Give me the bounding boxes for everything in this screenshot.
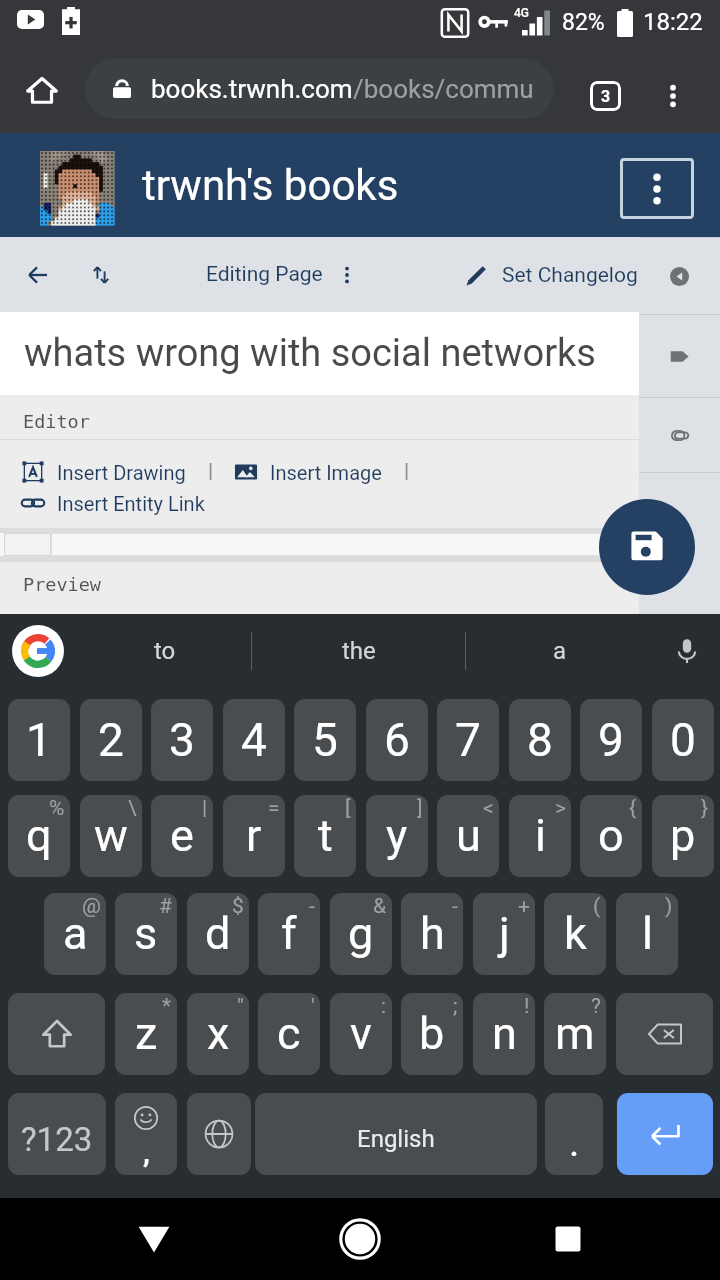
staticText: @ bbox=[82, 894, 101, 919]
button[interactable]: c bbox=[258, 993, 320, 1075]
button[interactable]: i bbox=[509, 795, 571, 877]
button[interactable]: h bbox=[401, 893, 463, 975]
button[interactable]: l bbox=[616, 893, 678, 975]
button[interactable]: f bbox=[258, 893, 320, 975]
button[interactable]: 9 bbox=[580, 699, 642, 781]
button[interactable]: to bbox=[78, 614, 251, 688]
button[interactable]: Google bbox=[12, 625, 64, 677]
staticText: /books/commu bbox=[353, 74, 534, 104]
button[interactable]: . bbox=[545, 1093, 603, 1175]
button[interactable]: Editing Page bbox=[206, 262, 357, 287]
staticText: j bbox=[499, 907, 510, 960]
button[interactable]: u bbox=[437, 795, 499, 877]
button[interactable]: 2 bbox=[80, 699, 142, 781]
staticText: k bbox=[564, 907, 587, 960]
staticText: . bbox=[570, 1130, 579, 1163]
button[interactable]: m bbox=[544, 993, 606, 1075]
button[interactable]: 6 bbox=[366, 699, 428, 781]
staticText: Insert Entity Link bbox=[57, 492, 205, 515]
button[interactable]: Back bbox=[14, 251, 62, 299]
staticText: ; bbox=[453, 994, 458, 1019]
button[interactable]: Insert Drawing bbox=[21, 460, 186, 484]
button[interactable]: d bbox=[187, 893, 249, 975]
staticText: 0 bbox=[670, 713, 696, 767]
button[interactable]: Insert Entity Link bbox=[21, 491, 205, 515]
button[interactable]: g bbox=[330, 893, 392, 975]
button[interactable]: Home bbox=[330, 1209, 390, 1269]
staticText: books.trwnh.com bbox=[151, 74, 353, 104]
button[interactable]: q bbox=[8, 795, 70, 877]
button[interactable]: Collapse bbox=[639, 238, 720, 314]
button[interactable]: s bbox=[115, 893, 177, 975]
button[interactable]: 1 bbox=[8, 699, 70, 781]
button[interactable]: n bbox=[473, 993, 535, 1075]
staticText: to bbox=[154, 637, 176, 665]
staticText: u bbox=[456, 809, 481, 862]
staticText: & bbox=[373, 894, 387, 919]
button[interactable]: Home bbox=[14, 62, 70, 118]
staticText: a bbox=[63, 907, 88, 960]
button[interactable]: Tags bbox=[639, 315, 720, 397]
button[interactable]: Change language bbox=[187, 1093, 251, 1175]
button[interactable]: r bbox=[223, 795, 285, 877]
button[interactable]: j bbox=[473, 893, 535, 975]
button[interactable]: English bbox=[255, 1093, 537, 1175]
staticText: { bbox=[629, 796, 637, 821]
button[interactable]: Tabs bbox=[582, 73, 628, 119]
button[interactable]: o bbox=[580, 795, 642, 877]
staticText: 4 bbox=[241, 713, 267, 767]
button[interactable]: Emoji bbox=[115, 1093, 177, 1175]
button[interactable]: Back bbox=[124, 1209, 184, 1269]
button[interactable]: 7 bbox=[437, 699, 499, 781]
button[interactable]: Recent apps bbox=[538, 1209, 598, 1269]
button[interactable]: the bbox=[252, 614, 465, 688]
button[interactable]: p bbox=[652, 795, 714, 877]
staticText: ' bbox=[311, 994, 315, 1019]
button[interactable]: t bbox=[294, 795, 356, 877]
staticText: 82% bbox=[562, 9, 605, 36]
staticText: ) bbox=[665, 894, 673, 919]
button[interactable]: v bbox=[330, 993, 392, 1075]
button[interactable]: y bbox=[366, 795, 428, 877]
button[interactable]: Save bbox=[599, 499, 695, 595]
button[interactable]: More options bbox=[650, 73, 696, 119]
button[interactable]: books.trwnh.com bbox=[85, 59, 554, 119]
staticText: ? bbox=[591, 994, 601, 1019]
button[interactable]: w bbox=[80, 795, 142, 877]
button[interactable]: e bbox=[151, 795, 213, 877]
button[interactable]: a bbox=[44, 893, 106, 975]
staticText: English bbox=[357, 1125, 435, 1153]
button[interactable]: b bbox=[401, 993, 463, 1075]
button[interactable]: Set Changelog bbox=[464, 262, 638, 288]
button[interactable]: Voice input bbox=[658, 614, 716, 688]
staticText: < bbox=[483, 796, 494, 821]
button[interactable]: z bbox=[115, 993, 177, 1075]
button[interactable]: ?123 bbox=[8, 1093, 106, 1175]
staticText: 5 bbox=[312, 713, 338, 767]
button[interactable]: Shift bbox=[8, 993, 105, 1075]
button[interactable]: Menu bbox=[620, 158, 694, 219]
button[interactable]: 8 bbox=[509, 699, 571, 781]
button[interactable]: Insert Image bbox=[234, 460, 382, 484]
staticText: " bbox=[237, 994, 244, 1019]
staticText: $ bbox=[232, 894, 244, 919]
staticText: ( bbox=[593, 894, 601, 919]
staticText: trwnh's books bbox=[142, 161, 399, 210]
button[interactable]: Enter bbox=[617, 1093, 713, 1175]
button[interactable]: x bbox=[187, 993, 249, 1075]
button[interactable]: 5 bbox=[294, 699, 356, 781]
staticText: ?123 bbox=[21, 1120, 93, 1159]
button[interactable]: 0 bbox=[652, 699, 714, 781]
staticText: c bbox=[277, 1007, 301, 1060]
button[interactable]: Backspace bbox=[616, 993, 713, 1075]
staticText: t bbox=[318, 809, 333, 862]
button[interactable]: Sort bbox=[79, 253, 123, 297]
staticText: 1 bbox=[26, 713, 52, 767]
button[interactable]: 3 bbox=[151, 699, 213, 781]
staticText: q bbox=[26, 809, 52, 862]
button[interactable]: a bbox=[466, 614, 654, 688]
button[interactable]: Attachments bbox=[639, 398, 720, 472]
button[interactable]: 4 bbox=[223, 699, 285, 781]
staticText: % bbox=[49, 796, 65, 821]
button[interactable]: k bbox=[544, 893, 606, 975]
